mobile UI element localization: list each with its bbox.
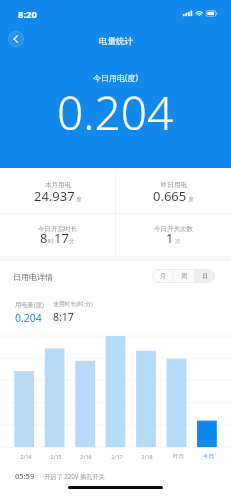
staticText: 2/15	[50, 453, 62, 460]
button[interactable]: 本月用电	[0, 168, 115, 213]
staticText: 时	[48, 238, 54, 245]
staticText: 0.204	[57, 81, 174, 144]
staticText: 周	[181, 272, 187, 280]
staticText: 8	[40, 229, 48, 247]
staticText: 度	[76, 196, 82, 203]
staticText: 开启了 220V 插孔开关	[44, 472, 105, 480]
staticText: 2/14	[20, 453, 32, 460]
staticText: 本月用电	[45, 181, 71, 189]
staticText: 17	[54, 229, 69, 247]
staticText: 昨日	[173, 453, 184, 460]
button[interactable]: 今日开启时长	[0, 214, 115, 256]
staticText: 今日开关次数	[154, 225, 193, 233]
staticText: 今日	[203, 453, 214, 460]
staticText: 今日用电(度)	[93, 72, 138, 83]
button[interactable]: 昨日用电	[116, 168, 231, 213]
staticText: 24.937	[34, 187, 75, 205]
staticText: 今日开启时长	[38, 225, 77, 233]
staticText: 分	[69, 238, 75, 245]
staticText: 1	[166, 229, 174, 247]
button[interactable]: 月	[152, 269, 173, 283]
staticText: 8:17	[53, 310, 74, 324]
staticText: 次	[175, 238, 181, 245]
staticText: 度	[188, 196, 194, 203]
button[interactable]: 今日开关次数	[116, 214, 231, 256]
staticText: 0.204	[15, 311, 42, 325]
button[interactable]: 日	[194, 269, 215, 283]
staticText: 2/16	[80, 453, 92, 460]
staticText: 电量统计	[99, 36, 133, 47]
staticText: 2/17	[111, 453, 123, 460]
staticText: 8:20	[18, 8, 37, 21]
staticText: 0.665	[153, 187, 187, 205]
staticText: 月	[160, 272, 166, 280]
button[interactable]: 周	[173, 269, 194, 283]
staticText: 2/18	[141, 453, 153, 460]
staticText: 05:59	[15, 471, 35, 481]
staticText: 用电量(度)	[15, 300, 44, 309]
button[interactable]: Back	[8, 31, 24, 47]
staticText: 日	[202, 272, 208, 280]
staticText: 日用电详情	[13, 272, 53, 282]
staticText: 昨日用电	[161, 181, 187, 189]
staticText: 使用时长(时:分)	[53, 300, 93, 308]
